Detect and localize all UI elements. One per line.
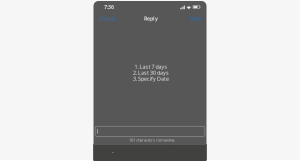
- staticText: 161 characters remaining: [129, 137, 174, 143]
- staticText: 2. Last 30 days: [133, 69, 169, 76]
- staticText: 7:36: [104, 3, 114, 11]
- button[interactable]: Cancel: [98, 13, 116, 24]
- staticText: Reply: [190, 15, 203, 22]
- button[interactable]: Reply: [189, 13, 204, 24]
- button[interactable]: [131, 144, 169, 161]
- button[interactable]: “”: [93, 144, 131, 161]
- button[interactable]: [169, 144, 206, 161]
- staticText: 3. Specify Date: [133, 75, 169, 82]
- button[interactable]: [95, 126, 205, 136]
- staticText: 1. Last 7 days: [134, 63, 167, 70]
- staticText: “”: [111, 151, 113, 156]
- staticText: Cancel: [99, 15, 115, 22]
- staticText: Reply: [144, 15, 158, 22]
